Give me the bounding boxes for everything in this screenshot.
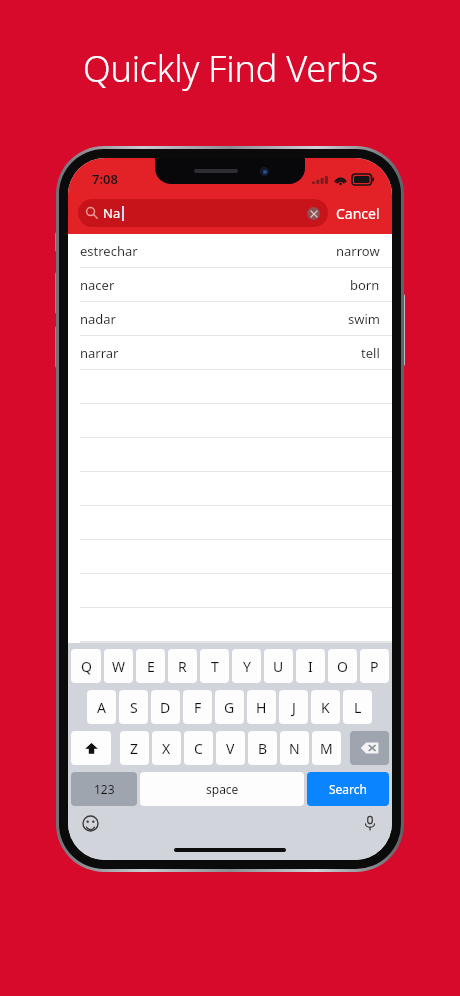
button[interactable]: estrechar	[68, 234, 392, 268]
staticText: E	[147, 657, 155, 676]
staticText: V	[226, 739, 235, 758]
button[interactable]: Na	[78, 199, 328, 227]
button[interactable]: M	[312, 731, 341, 765]
staticText: U	[273, 657, 284, 676]
staticText: W	[112, 657, 126, 676]
button[interactable]: O	[328, 649, 357, 683]
button[interactable]: G	[215, 690, 244, 724]
button[interactable]: B	[248, 731, 277, 765]
staticText: Cancel	[336, 204, 380, 223]
button[interactable]: S	[119, 690, 148, 724]
button[interactable]: F	[183, 690, 212, 724]
staticText: F	[194, 698, 202, 717]
button[interactable]: Cancel	[328, 204, 382, 223]
staticText: O	[337, 657, 348, 676]
staticText: Q	[81, 657, 92, 676]
staticText: tell	[361, 344, 380, 362]
staticText: A	[97, 698, 106, 717]
staticText: 7:08	[92, 170, 118, 188]
button[interactable]: Q	[71, 649, 101, 683]
staticText: R	[178, 657, 187, 676]
staticText: born	[350, 276, 380, 294]
staticText: estrechar	[80, 242, 138, 260]
staticText: S	[130, 698, 138, 717]
staticText: 123	[94, 781, 115, 797]
button[interactable]: Y	[232, 649, 261, 683]
button[interactable]: I	[296, 649, 325, 683]
staticText: H	[256, 698, 267, 717]
button[interactable]: D	[151, 690, 180, 724]
button[interactable]: nadar	[68, 302, 392, 336]
staticText: B	[258, 739, 268, 758]
staticText: N	[289, 739, 300, 758]
staticText: narrar	[80, 344, 119, 362]
button[interactable]: C	[184, 731, 213, 765]
staticText: G	[224, 698, 235, 717]
staticText: P	[370, 657, 379, 676]
button[interactable]: N	[280, 731, 309, 765]
button[interactable]: narrar	[68, 336, 392, 370]
button[interactable]: U	[264, 649, 293, 683]
button[interactable]: Backspace	[350, 731, 389, 765]
staticText: Search	[329, 781, 367, 797]
button[interactable]: Z	[120, 731, 149, 765]
staticText: T	[211, 657, 219, 676]
staticText: Na	[103, 204, 121, 222]
staticText: J	[292, 698, 296, 717]
button[interactable]: Emoji	[80, 813, 100, 833]
button[interactable]: J	[279, 690, 308, 724]
button[interactable]: Dictation	[360, 813, 380, 833]
staticText: M	[320, 739, 333, 758]
staticText: nadar	[80, 310, 116, 328]
staticText: C	[194, 739, 203, 758]
button[interactable]: P	[360, 649, 389, 683]
staticText: D	[160, 698, 171, 717]
staticText: X	[162, 739, 171, 758]
button[interactable]: V	[216, 731, 245, 765]
staticText: swim	[348, 310, 380, 328]
button[interactable]: W	[104, 649, 133, 683]
staticText: K	[321, 698, 330, 717]
button[interactable]: E	[136, 649, 165, 683]
button[interactable]: space	[140, 772, 304, 806]
staticText: nacer	[80, 276, 115, 294]
button[interactable]: A	[87, 690, 116, 724]
button[interactable]: Clear text	[307, 207, 320, 220]
button[interactable]: R	[168, 649, 197, 683]
button[interactable]: 123	[71, 772, 137, 806]
staticText: Y	[243, 657, 251, 676]
staticText: I	[308, 657, 313, 676]
button[interactable]: K	[311, 690, 340, 724]
staticText: L	[354, 698, 362, 717]
staticText: Quickly Find Verbs	[83, 44, 378, 93]
staticText: narrow	[336, 242, 380, 260]
button[interactable]: Search	[307, 772, 389, 806]
button[interactable]: nacer	[68, 268, 392, 302]
button[interactable]: X	[152, 731, 181, 765]
button[interactable]: T	[200, 649, 229, 683]
button[interactable]: Shift	[71, 731, 111, 765]
staticText: Z	[130, 739, 139, 758]
button[interactable]: H	[247, 690, 276, 724]
staticText: space	[206, 781, 239, 797]
button[interactable]: L	[343, 690, 372, 724]
